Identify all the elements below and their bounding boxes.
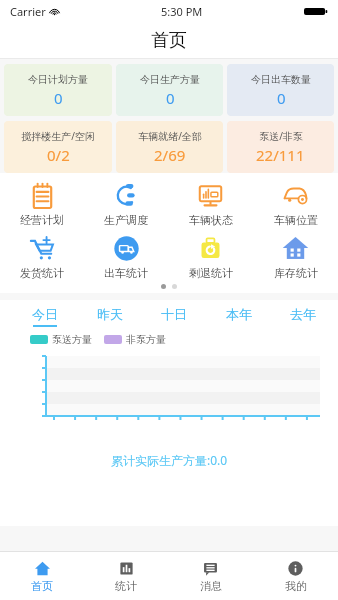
staticText: 0/2 [47, 145, 70, 165]
staticText: 今日出车数量 [251, 73, 311, 86]
staticText: 去年 [290, 306, 316, 322]
button[interactable]: 搅拌楼生产/空闲 [4, 121, 112, 173]
staticText: 我的 [285, 579, 307, 593]
staticText: 22/111 [256, 145, 305, 165]
staticText: 十日 [161, 306, 187, 322]
staticText: 累计实际生产方量:0.0 [111, 452, 228, 468]
staticText: 昨天 [97, 306, 123, 322]
staticText: 首页 [151, 29, 187, 52]
button[interactable]: 首页 [0, 552, 84, 600]
staticText: 剩退统计 [189, 266, 233, 280]
button[interactable]: 十日 [159, 306, 189, 327]
staticText: 泵送方量 [52, 333, 92, 346]
button[interactable]: 泵送/非泵 [227, 121, 334, 173]
staticText: 今日 [32, 306, 58, 322]
button[interactable]: 统计 [84, 552, 168, 600]
staticText: 今日生产方量 [140, 73, 200, 86]
staticText: 非泵方量 [126, 333, 166, 346]
button[interactable]: 消息 [168, 552, 253, 600]
button[interactable]: 今日 [30, 306, 60, 327]
button[interactable]: 我的 [253, 552, 338, 600]
staticText: 发货统计 [20, 266, 64, 280]
button[interactable]: 今日计划方量 [4, 64, 112, 116]
staticText: 车辆就绪/全部 [138, 129, 202, 143]
button[interactable]: 发货统计 [0, 232, 84, 282]
staticText: 泵送/非泵 [259, 129, 303, 143]
button[interactable]: 车辆位置 [253, 179, 338, 229]
staticText: 首页 [31, 579, 53, 593]
staticText: 统计 [115, 579, 137, 593]
staticText: 0 [277, 88, 286, 108]
button[interactable]: 出车统计 [84, 232, 168, 282]
staticText: 搅拌楼生产/空闲 [21, 129, 95, 143]
button[interactable]: 今日出车数量 [227, 64, 334, 116]
staticText: 车辆位置 [274, 213, 318, 227]
staticText: 5:30 PM [161, 4, 203, 19]
staticText: 库存统计 [274, 266, 318, 280]
staticText: 消息 [200, 579, 222, 593]
button[interactable]: 本年 [224, 306, 254, 327]
button[interactable]: 经营计划 [0, 179, 84, 229]
button[interactable]: 昨天 [95, 306, 125, 327]
button[interactable]: 车辆就绪/全部 [116, 121, 223, 173]
staticText: 经营计划 [20, 213, 64, 227]
button[interactable]: 去年 [288, 306, 318, 327]
button[interactable]: 今日生产方量 [116, 64, 223, 116]
staticText: 本年 [226, 306, 252, 322]
button[interactable]: 车辆状态 [168, 179, 253, 229]
staticText: 生产调度 [104, 213, 148, 227]
staticText: 2/69 [154, 145, 186, 165]
staticText: 车辆状态 [189, 213, 233, 227]
button[interactable]: 剩退统计 [168, 232, 253, 282]
staticText: 今日计划方量 [28, 73, 88, 86]
staticText: Carrier [10, 4, 46, 19]
staticText: 出车统计 [104, 266, 148, 280]
staticText: 0 [166, 88, 175, 108]
staticText: 0 [54, 88, 63, 108]
button[interactable]: 库存统计 [253, 232, 338, 282]
button[interactable]: 生产调度 [84, 179, 168, 229]
